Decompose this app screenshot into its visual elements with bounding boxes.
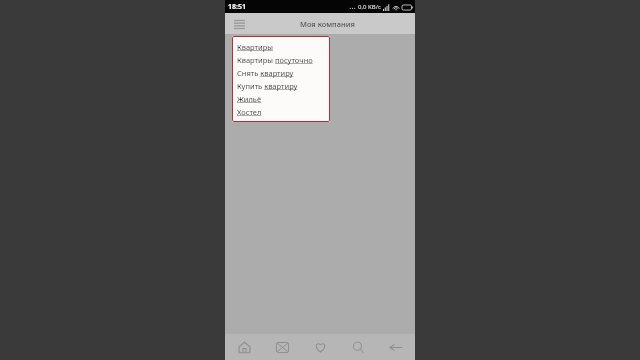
button[interactable]: Open navigation menu (231, 16, 247, 32)
staticText: Хостел (237, 107, 262, 117)
button[interactable]: Back (377, 334, 415, 360)
staticText: 0,0 KB/c (358, 3, 381, 11)
button[interactable]: Купить квартиру (237, 79, 325, 92)
button[interactable]: Favorites (301, 334, 339, 360)
button[interactable]: Messages (263, 334, 301, 360)
staticText: Жильё (237, 94, 262, 104)
staticText: Снять квартиру (237, 68, 294, 78)
staticText: Моя компания (300, 19, 355, 29)
button[interactable]: Квартиры посуточно (237, 53, 325, 66)
staticText: Квартиры (237, 42, 273, 52)
button[interactable]: Жильё (237, 92, 325, 105)
staticText: Квартиры посуточно (237, 55, 313, 65)
staticText: Купить квартиру (237, 81, 298, 91)
button[interactable]: Home (225, 334, 263, 360)
button[interactable]: Хостел (237, 105, 325, 118)
button[interactable]: Search (339, 334, 377, 360)
button[interactable]: Квартиры (237, 40, 325, 53)
button[interactable]: Снять квартиру (237, 66, 325, 79)
staticText: 18:51 (228, 2, 246, 12)
